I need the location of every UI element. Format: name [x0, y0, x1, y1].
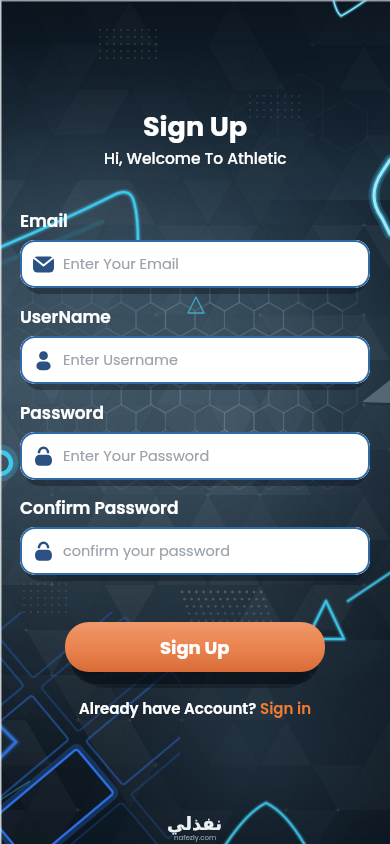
- staticText: nafezly.com: [174, 833, 217, 843]
- button[interactable]: Enter Your Email: [20, 240, 370, 288]
- staticText: Email: [20, 209, 68, 233]
- staticText: Enter Your Password: [63, 446, 210, 466]
- staticText: Hi, Welcome To Athletic: [104, 148, 287, 170]
- staticText: Password: [20, 401, 104, 425]
- staticText: Confirm Password: [20, 496, 179, 520]
- staticText: Already have Account?: [79, 698, 260, 719]
- button[interactable]: Sign in: [260, 698, 312, 719]
- staticText: نفذلي: [167, 813, 223, 834]
- button[interactable]: Enter Username: [20, 336, 370, 384]
- staticText: UserName: [20, 305, 111, 329]
- button[interactable]: Sign Up: [65, 622, 325, 672]
- button[interactable]: Enter Your Password: [20, 432, 370, 480]
- staticText: Enter Your Email: [63, 254, 179, 274]
- staticText: Enter Username: [63, 350, 179, 370]
- staticText: Sign Up: [143, 108, 248, 146]
- button[interactable]: confirm your password: [20, 527, 370, 575]
- staticText: Sign Up: [160, 635, 230, 660]
- staticText: confirm your password: [63, 541, 231, 561]
